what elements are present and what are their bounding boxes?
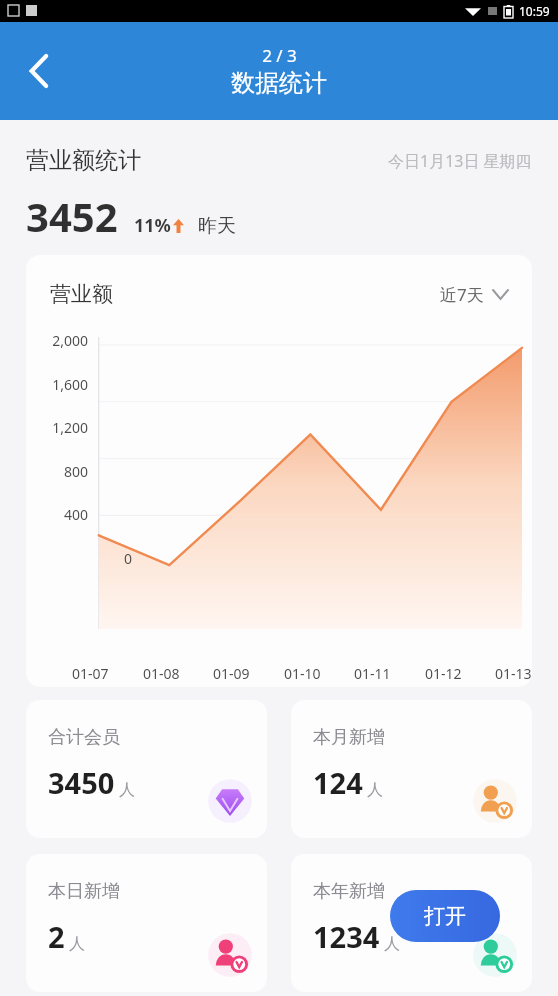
staticText: 01-09	[213, 664, 250, 683]
staticText: 2 / 3	[262, 44, 297, 67]
staticText: 1,200	[30, 418, 88, 437]
button[interactable]: 合计会员	[26, 700, 267, 838]
staticText: 124	[313, 763, 363, 802]
button[interactable]: 本日新增	[26, 854, 267, 992]
staticText: 10:59	[519, 3, 550, 19]
staticText: 人	[367, 780, 383, 800]
staticText: 01-07	[72, 664, 109, 683]
button[interactable]: Back	[14, 45, 66, 97]
staticText: 人	[119, 780, 135, 800]
staticText: 1234	[313, 917, 380, 956]
staticText: 本月新增	[313, 726, 385, 749]
staticText: 营业额统计	[26, 146, 141, 175]
staticText: 本日新增	[48, 880, 120, 903]
staticText: 1,600	[30, 375, 88, 394]
staticText: 近7天	[440, 283, 484, 306]
button[interactable]: 营业额	[26, 255, 532, 687]
staticText: 11%	[134, 213, 171, 238]
button[interactable]: 近7天	[440, 283, 508, 306]
button[interactable]: 本月新增	[291, 700, 532, 838]
staticText: 人	[384, 934, 400, 954]
staticText: 01-10	[284, 664, 321, 683]
staticText: 01-12	[425, 664, 462, 683]
staticText: 今日1月13日 星期四	[388, 150, 532, 172]
staticText: 3452	[26, 189, 118, 243]
staticText: 合计会员	[48, 726, 120, 749]
staticText: 2,000	[30, 331, 88, 350]
staticText: 01-08	[143, 664, 180, 683]
staticText: 0	[74, 549, 132, 568]
button[interactable]: 本年新增	[291, 854, 532, 992]
button[interactable]: 打开	[390, 890, 500, 942]
staticText: 昨天	[198, 214, 236, 238]
staticText: 800	[30, 462, 88, 481]
staticText: 营业额	[50, 281, 113, 307]
staticText: 2	[48, 917, 65, 956]
staticText: 01-11	[354, 664, 391, 683]
staticText: 打开	[424, 903, 466, 929]
staticText: 数据统计	[231, 68, 327, 98]
staticText: 400	[30, 505, 88, 524]
staticText: 01-13	[495, 664, 532, 683]
staticText: 人	[69, 934, 85, 954]
staticText: 本年新增	[313, 880, 385, 903]
staticText: 3450	[48, 763, 115, 802]
